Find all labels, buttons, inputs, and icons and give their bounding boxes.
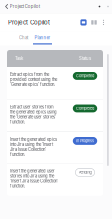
staticText: Insert the generated user stories into J… [10,168,58,188]
button[interactable]: Extract user stories from the generated … [7,99,103,131]
staticText: Insert the generated epics into Jira usi… [10,137,57,157]
button[interactable]: Insert the generated user stories into J… [7,163,103,195]
button[interactable]: Recording [95,0,104,13]
button[interactable]: Chat [14,32,33,45]
staticText: Completed [76,106,94,111]
button[interactable]: Planner [33,32,52,45]
staticText: Planner [34,35,50,40]
button[interactable]: Chat [78,13,89,31]
staticText: Project Copilot [8,19,50,26]
button[interactable]: Status [104,0,112,13]
staticText: In Progress [76,139,94,143]
button[interactable]: Project Copilot [0,0,40,13]
staticText: Task [15,56,23,61]
button[interactable]: Insert the generated epics into Jira usi… [7,132,103,163]
staticText: Pending [78,170,91,175]
button[interactable]: More options [99,13,108,31]
staticText: Status [79,56,91,61]
button[interactable]: Compare [89,13,99,31]
staticText: Extract user stories from the generated … [10,104,57,124]
staticText: Chat [19,35,28,40]
staticText: Extract epics from the provided context … [10,72,57,87]
button[interactable]: Extract epics from the provided context … [7,67,103,99]
staticText: Completed [76,74,94,78]
staticText: Project Copilot [10,4,40,9]
